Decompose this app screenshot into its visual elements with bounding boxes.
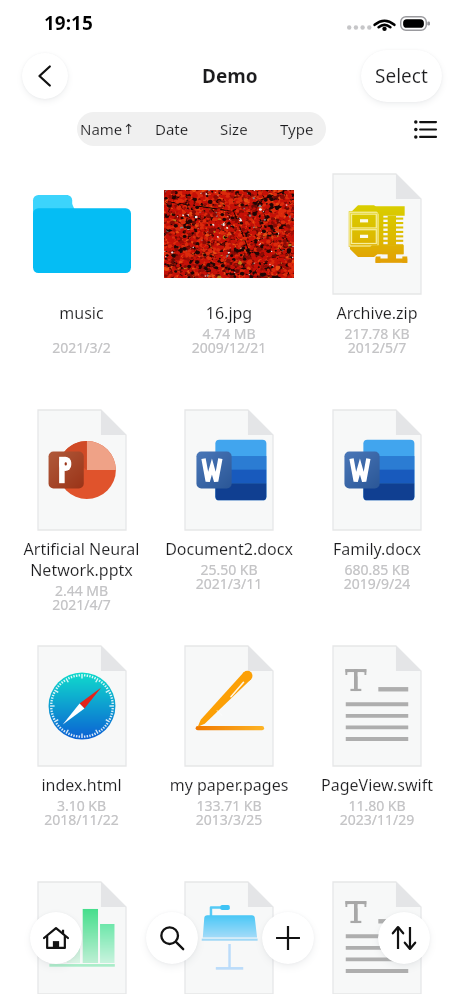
button[interactable]: Archive.zip: [303, 152, 451, 388]
button[interactable]: Document2.docx: [155, 388, 303, 624]
button[interactable]: Home: [30, 912, 82, 964]
staticText: 19:15: [44, 10, 93, 36]
staticText: Family.docx: [309, 538, 445, 560]
staticText: 2021/3/2: [8, 338, 155, 357]
staticText: 2009/12/21: [155, 338, 303, 357]
staticText: PageView.swift: [309, 774, 445, 796]
button[interactable]: my paper.pages: [155, 624, 303, 860]
staticText: 2018/11/22: [8, 810, 155, 829]
button[interactable]: Family.docx: [303, 388, 451, 624]
button[interactable]: Date: [155, 119, 189, 139]
staticText: Artificial Neural Network.pptx: [14, 538, 149, 581]
staticText: 680.85 KB: [303, 560, 451, 579]
staticText: my paper.pages: [161, 774, 297, 796]
button[interactable]: Sort: [378, 912, 430, 964]
staticText: 4.74 MB: [155, 324, 303, 343]
button[interactable]: music: [8, 152, 155, 388]
staticText: 2021/3/11: [155, 574, 303, 593]
button[interactable]: Back: [22, 53, 68, 99]
staticText: Name: [80, 119, 123, 139]
staticText: ↑: [123, 121, 135, 137]
button[interactable]: Data.numbers: [8, 860, 155, 994]
staticText: 217.78 KB: [303, 324, 451, 343]
button[interactable]: Size: [220, 119, 248, 139]
staticText: 25.50 KB: [155, 560, 303, 579]
button[interactable]: List view: [408, 112, 442, 146]
staticText: 2021/4/7: [8, 595, 155, 614]
button[interactable]: Type: [280, 119, 314, 139]
staticText: 2019/9/24: [303, 574, 451, 593]
button[interactable]: PageView.swift: [303, 624, 451, 860]
staticText: music: [14, 302, 149, 324]
button[interactable]: 16.jpg: [155, 152, 303, 388]
staticText: 11.80 KB: [303, 796, 451, 815]
staticText: index.html: [14, 774, 149, 796]
staticText: 16.jpg: [161, 302, 297, 324]
staticText: 3.10 KB: [8, 796, 155, 815]
button[interactable]: Name: [80, 119, 135, 139]
staticText: Document2.docx: [161, 538, 297, 560]
staticText: 133.71 KB: [155, 796, 303, 815]
button[interactable]: Deck.key: [155, 860, 303, 994]
staticText: 2.44 MB: [8, 581, 155, 600]
button[interactable]: Add: [262, 912, 314, 964]
button[interactable]: Notes.swift: [303, 860, 451, 994]
button[interactable]: Select: [361, 50, 442, 102]
staticText: 2023/11/29: [303, 810, 451, 829]
button[interactable]: Artificial Neural Network.pptx: [8, 388, 155, 624]
staticText: 2012/5/7: [303, 338, 451, 357]
staticText: Archive.zip: [309, 302, 445, 324]
staticText: Demo: [202, 63, 258, 89]
staticText: 2013/3/25: [155, 810, 303, 829]
button[interactable]: index.html: [8, 624, 155, 860]
staticText: Select: [375, 63, 428, 89]
button[interactable]: Search: [146, 912, 198, 964]
